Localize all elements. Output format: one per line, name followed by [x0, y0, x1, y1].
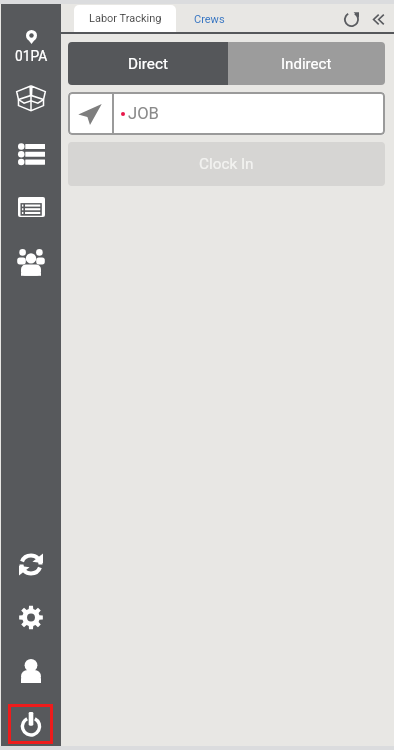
button[interactable]: Reports — [1, 192, 61, 222]
staticText: Indirect — [281, 55, 332, 73]
button[interactable]: Clock In — [68, 142, 385, 186]
staticText: JOB — [128, 104, 159, 123]
button[interactable]: Refresh — [338, 6, 364, 32]
button[interactable]: Profile — [1, 656, 61, 686]
button[interactable]: 01PA — [1, 30, 61, 64]
button[interactable]: Direct — [68, 42, 228, 85]
button[interactable]: Collapse panel — [364, 6, 390, 32]
staticText: 01PA — [15, 48, 48, 64]
staticText: Crews — [194, 13, 225, 26]
staticText: Clock In — [199, 155, 254, 173]
button[interactable]: Labor Tracking — [74, 5, 176, 32]
button[interactable]: Indirect — [228, 42, 385, 85]
button[interactable]: Settings — [1, 602, 61, 632]
staticText: Direct — [128, 55, 168, 73]
button[interactable]: Inventory — [1, 84, 61, 114]
button[interactable]: JOB — [68, 92, 385, 135]
staticText: Labor Tracking — [89, 12, 162, 25]
button[interactable]: Log out — [8, 704, 53, 744]
button[interactable]: Crews — [1, 248, 61, 278]
button[interactable]: Crews — [186, 7, 233, 31]
button[interactable]: List — [1, 139, 61, 169]
button[interactable]: Sync — [1, 549, 61, 579]
